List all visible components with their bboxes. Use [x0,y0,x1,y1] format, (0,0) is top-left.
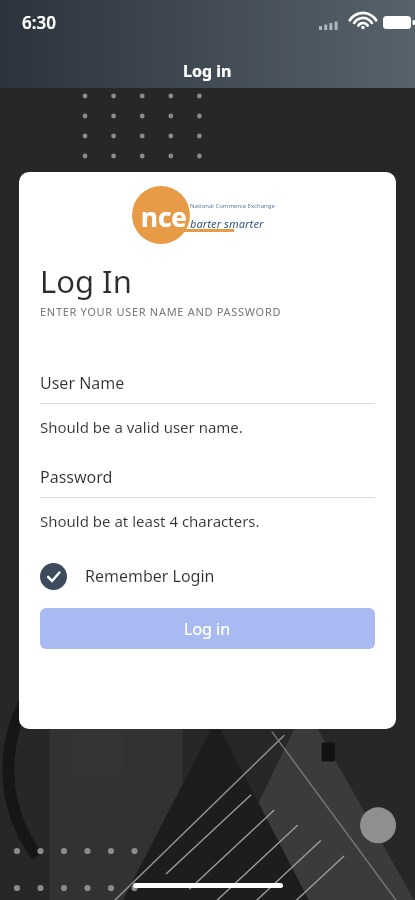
staticText: Log in [184,618,231,640]
staticText: barter smarter [190,216,264,231]
staticText: ENTER YOUR USER NAME AND PASSWORD [40,304,282,319]
staticText: 6:30 [22,11,56,34]
button[interactable]: Password [40,466,375,531]
staticText: Should be a valid user name. [40,417,243,437]
staticText: User Name [40,372,125,394]
button[interactable]: User Name [40,372,375,437]
staticText: Should be at least 4 characters. [40,511,260,531]
staticText: Log In [40,260,132,302]
button[interactable]: Remember Login checkbox [40,559,375,593]
staticText: Password [40,466,113,488]
staticText: Log in [183,60,232,82]
other: Remember Login checkbox [40,563,67,590]
button[interactable]: Log in [40,608,375,649]
staticText: Remember Login [85,565,215,587]
staticText: National Commerce Exchange [190,202,275,210]
staticText: nce [141,199,187,234]
